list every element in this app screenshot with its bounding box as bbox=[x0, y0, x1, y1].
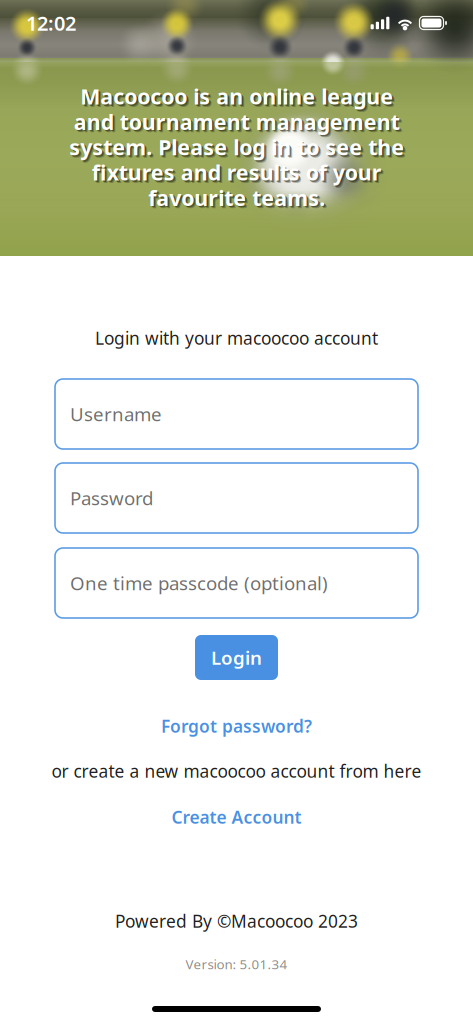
staticText: Macoocoo is an online league and tournam… bbox=[69, 82, 404, 212]
button[interactable]: Forgot password? bbox=[161, 715, 312, 737]
staticText: Username bbox=[70, 402, 162, 426]
staticText: Macoocoo is an online league and tournam… bbox=[70, 84, 405, 213]
staticText: Create Account bbox=[171, 805, 301, 828]
staticText: Version: 5.01.34 bbox=[185, 955, 287, 973]
staticText: Forgot password? bbox=[161, 714, 312, 737]
button[interactable]: Create Account bbox=[171, 806, 301, 828]
staticText: 12:02 bbox=[26, 10, 76, 36]
staticText: Password bbox=[70, 486, 153, 510]
staticText: Macoocoo is an online league and tournam… bbox=[71, 85, 406, 214]
staticText: One time passcode (optional) bbox=[70, 571, 328, 595]
staticText: or create a new macoocoo account from he… bbox=[51, 759, 421, 782]
staticText: Powered By ©Macoocoo 2023 bbox=[115, 909, 358, 932]
button[interactable]: Login bbox=[195, 635, 278, 680]
staticText: Login bbox=[211, 645, 262, 670]
staticText: Login with your macoocoo account bbox=[95, 326, 378, 349]
